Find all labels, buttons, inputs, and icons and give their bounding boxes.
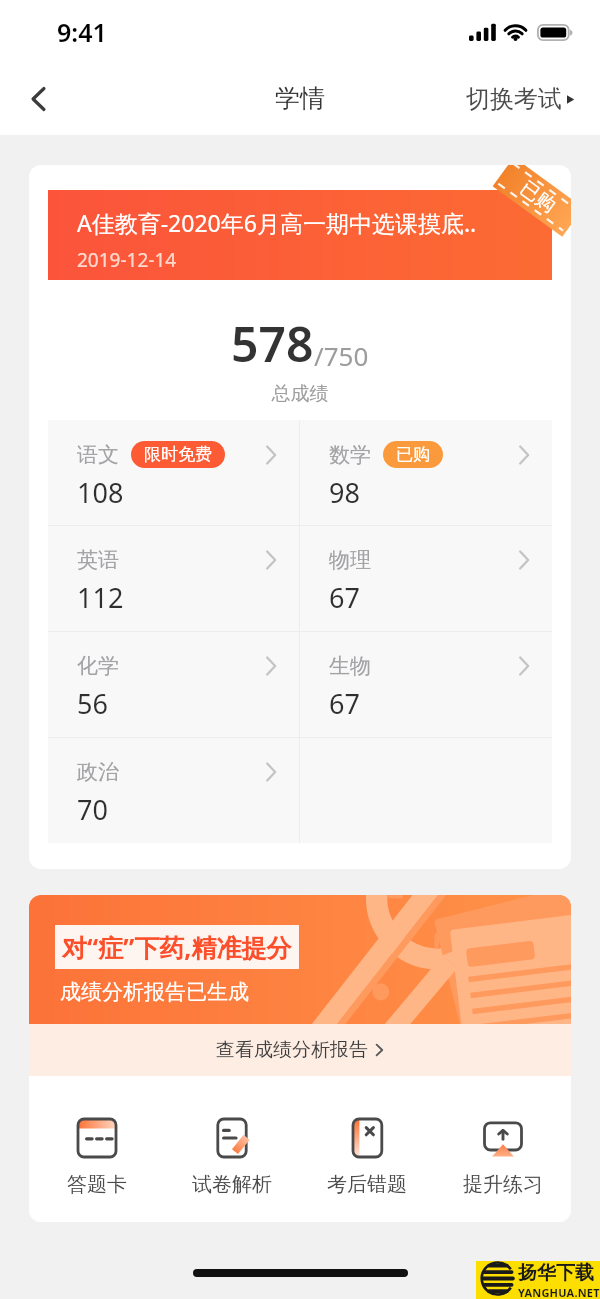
- staticText: 试卷解析: [192, 1172, 272, 1197]
- button[interactable]: 政治: [48, 738, 299, 843]
- staticText: 108: [77, 474, 124, 511]
- staticText: 9:41: [57, 15, 107, 49]
- button[interactable]: 英语: [48, 526, 299, 631]
- staticText: 英语: [77, 547, 119, 573]
- button[interactable]: 答题卡: [29, 1076, 164, 1222]
- staticText: 2019-12-14: [77, 247, 177, 273]
- staticText: 语文: [77, 442, 119, 468]
- button[interactable]: 试卷解析: [164, 1076, 299, 1222]
- staticText: 578: [231, 311, 314, 376]
- button[interactable]: 查看成绩分析报告: [29, 1024, 571, 1076]
- staticText: 学情: [275, 83, 325, 114]
- staticText: 70: [77, 791, 108, 828]
- button[interactable]: 切换考试: [466, 84, 576, 114]
- staticText: /750: [314, 338, 369, 373]
- staticText: 67: [329, 579, 360, 616]
- staticText: 67: [329, 685, 360, 722]
- button[interactable]: 生物: [300, 632, 552, 737]
- staticText: 数学: [329, 442, 371, 468]
- staticText: 查看成绩分析报告: [216, 1038, 368, 1062]
- staticText: 限时免费: [144, 444, 212, 465]
- staticText: A佳教育-2020年6月高一期中选课摸底..: [77, 207, 477, 238]
- staticText: 政治: [77, 759, 119, 785]
- staticText: 已购: [516, 176, 560, 218]
- staticText: 扬华下载: [518, 1261, 594, 1285]
- staticText: 112: [77, 579, 124, 616]
- button[interactable]: 数学: [300, 420, 552, 525]
- staticText: 成绩分析报告已生成: [60, 979, 249, 1005]
- button[interactable]: Back: [0, 62, 76, 135]
- staticText: 98: [329, 474, 360, 511]
- button[interactable]: 提升练习: [435, 1076, 571, 1222]
- button[interactable]: 化学: [48, 632, 299, 737]
- button[interactable]: 考后错题: [299, 1076, 435, 1222]
- staticText: 56: [77, 685, 108, 722]
- staticText: 答题卡: [67, 1172, 127, 1197]
- staticText: YANGHUA.NET: [518, 1285, 600, 1299]
- button[interactable]: 语文: [48, 420, 299, 525]
- staticText: 总成绩: [29, 382, 571, 406]
- staticText: 化学: [77, 653, 119, 679]
- staticText: 考后错题: [327, 1172, 407, 1197]
- staticText: 已购: [396, 444, 430, 465]
- staticText: 物理: [329, 547, 371, 573]
- staticText: 提升练习: [463, 1172, 543, 1197]
- staticText: 切换考试: [466, 84, 562, 114]
- staticText: 对“症”下药,精准提分: [62, 930, 292, 964]
- button[interactable]: 物理: [300, 526, 552, 631]
- staticText: 生物: [329, 653, 371, 679]
